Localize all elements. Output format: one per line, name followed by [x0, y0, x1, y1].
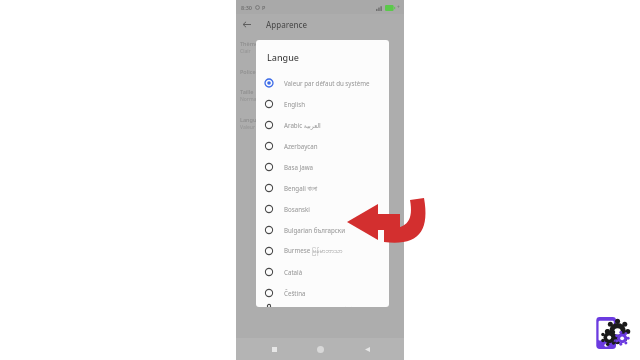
button[interactable]: Recents	[265, 340, 283, 358]
button[interactable]: Chinese (Simplified) 中文 (简体)	[256, 303, 389, 307]
staticText: Taille	[240, 88, 254, 95]
staticText: Apparence	[266, 19, 308, 30]
staticText: Langue	[240, 116, 260, 123]
staticText: Burmese မြန်မာဘာသာ	[284, 246, 343, 256]
staticText: Arabic العربية	[284, 121, 321, 129]
staticText: Langue	[267, 51, 299, 63]
staticText: Bengali বাংলা	[284, 184, 318, 192]
button[interactable]: Home	[311, 340, 329, 358]
staticText: Valeur	[240, 124, 255, 131]
staticText: Police	[240, 68, 256, 75]
staticText: Valeur par défaut du système	[284, 79, 370, 87]
staticText: Català	[284, 268, 303, 276]
button[interactable]: Bengali বাংলা	[256, 177, 389, 198]
staticText: Normal	[240, 96, 258, 103]
staticText: +	[397, 4, 400, 11]
button[interactable]: Burmese မြန်မာဘာသာ	[256, 240, 389, 261]
staticText: Čeština	[284, 289, 306, 297]
staticText: 8:30	[241, 4, 252, 11]
button[interactable]: Valeur par défaut du système	[256, 72, 389, 93]
button[interactable]: Arabic العربية	[256, 114, 389, 135]
staticText: Bulgarian български	[284, 226, 345, 234]
staticText: Bosanski	[284, 205, 310, 213]
staticText: Clair	[240, 48, 251, 55]
button[interactable]: App logo	[594, 314, 632, 352]
button[interactable]: Back	[358, 340, 376, 358]
staticText: Thème	[240, 40, 259, 47]
staticText: Basa Jawa	[284, 163, 314, 171]
button[interactable]: Català	[256, 261, 389, 282]
button[interactable]: Bulgarian български	[256, 219, 389, 240]
button[interactable]: Čeština	[256, 282, 389, 303]
button[interactable]: Azerbaycan	[256, 135, 389, 156]
button[interactable]: Back	[236, 14, 256, 34]
staticText: Azerbaycan	[284, 142, 318, 150]
button[interactable]: Basa Jawa	[256, 156, 389, 177]
staticText: P	[262, 4, 266, 11]
button[interactable]: Bosanski	[256, 198, 389, 219]
button[interactable]: English	[256, 93, 389, 114]
staticText: English	[284, 100, 306, 108]
